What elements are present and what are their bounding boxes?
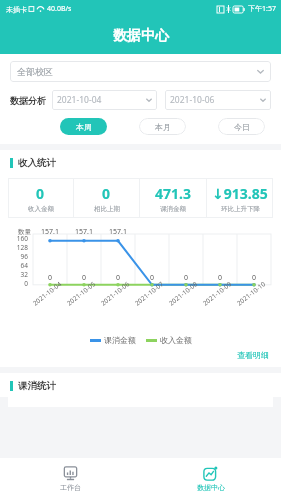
staticText: 2021-10-10	[235, 279, 267, 307]
staticText: 2021-10-08	[167, 279, 199, 307]
staticText: 2021-10-06	[170, 94, 215, 106]
staticText: 收入金额	[160, 335, 192, 345]
staticText: 下午1:57	[248, 4, 276, 14]
staticText: 收入金额	[28, 205, 54, 213]
staticText: 0	[144, 273, 160, 283]
staticText: 数量	[18, 228, 31, 236]
staticText: 0	[212, 273, 228, 283]
button[interactable]: 工作台	[0, 458, 140, 500]
button[interactable]: ↓913.85	[207, 178, 273, 218]
button[interactable]: 0	[8, 178, 73, 218]
staticText: 0	[6, 279, 28, 288]
button[interactable]: 0	[74, 178, 139, 218]
staticText: ↓913.85	[212, 184, 268, 203]
button[interactable]: 2021-10-06	[165, 90, 271, 110]
staticText: 96	[6, 252, 28, 261]
staticText: 查看明细	[237, 350, 269, 360]
button[interactable]: 471.3	[140, 178, 206, 218]
staticText: 收入统计	[18, 157, 56, 169]
staticText: 工作台	[60, 483, 81, 492]
staticText: 相比上期	[94, 205, 120, 213]
button[interactable]: 本周	[60, 118, 107, 135]
staticText: 160	[6, 234, 28, 243]
staticText: 课消金额	[160, 205, 186, 213]
staticText: 本周	[76, 122, 92, 132]
staticText: 0	[36, 184, 45, 203]
staticText: 471.3	[155, 184, 191, 203]
staticText: 0	[178, 273, 194, 283]
button[interactable]: 查看明细	[237, 350, 269, 360]
staticText: 157.1	[106, 227, 130, 237]
staticText: 数据中心	[197, 483, 225, 492]
staticText: 128	[6, 243, 28, 252]
staticText: 2021-10-06	[99, 279, 131, 307]
button[interactable]: 2021-10-04	[52, 90, 157, 110]
staticText: 2021-10-04	[57, 94, 102, 106]
staticText: 2021-10-09	[201, 279, 233, 307]
staticText: 课消金额	[104, 335, 136, 345]
staticText: 全部校区	[17, 66, 53, 77]
staticText: 本月	[155, 122, 171, 132]
staticText: 课消统计	[18, 380, 56, 392]
staticText: 2021-10-05	[65, 279, 97, 307]
staticText: 0	[110, 273, 126, 283]
staticText: 0	[102, 184, 111, 203]
staticText: 2021-10-07	[133, 279, 165, 307]
staticText: 0	[42, 273, 58, 283]
staticText: 数据中心	[113, 27, 169, 45]
staticText: 0	[76, 273, 92, 283]
staticText: 32	[6, 270, 28, 279]
button[interactable]: 数据中心	[140, 458, 281, 500]
button[interactable]: 全部校区	[10, 61, 271, 82]
staticText: 40.0B/s	[47, 4, 72, 14]
staticText: 0	[246, 273, 262, 283]
staticText: 64	[6, 261, 28, 270]
staticText: 157.1	[72, 227, 96, 237]
staticText: 数据分析	[10, 95, 46, 106]
button[interactable]: 今日	[218, 118, 265, 135]
staticText: 2021-10-04	[31, 279, 63, 307]
staticText: 今日	[234, 122, 250, 132]
button[interactable]: 本月	[139, 118, 186, 135]
staticText: 环比上升下降	[221, 205, 260, 213]
staticText: 未插卡	[6, 5, 27, 14]
staticText: 157.1	[38, 227, 62, 237]
